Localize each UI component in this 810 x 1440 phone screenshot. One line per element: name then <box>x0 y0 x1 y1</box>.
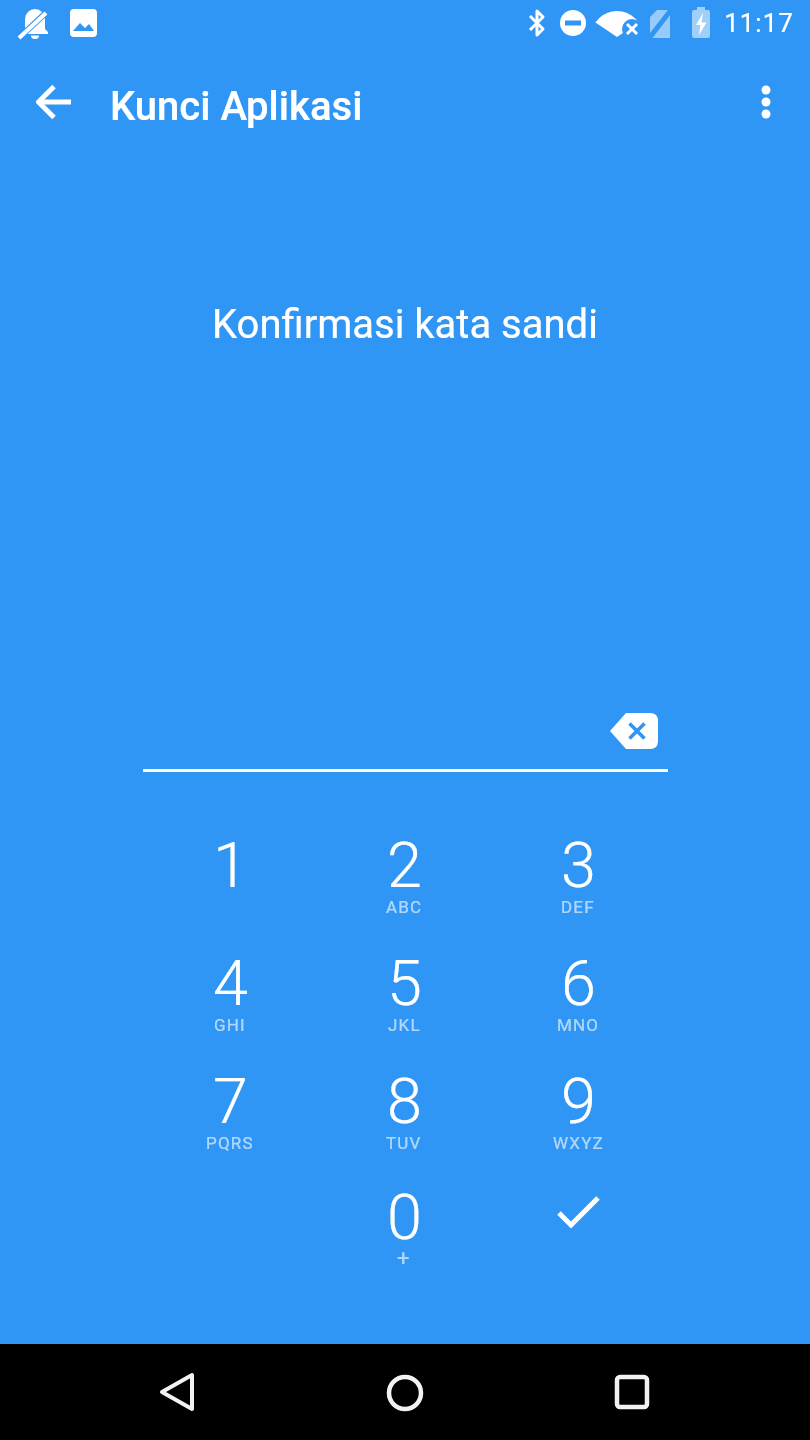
staticText: WXYZ <box>553 1133 604 1153</box>
staticText: PQRS <box>206 1133 254 1153</box>
staticText: 11:17 <box>724 8 794 38</box>
button[interactable] <box>598 701 670 761</box>
staticText: MNO <box>557 1015 600 1035</box>
button[interactable] <box>491 1162 665 1272</box>
staticText: Kunci Aplikasi <box>110 83 363 130</box>
button[interactable] <box>330 1344 480 1440</box>
staticText: 2 <box>387 829 422 903</box>
staticText: 9 <box>561 1065 596 1139</box>
button[interactable] <box>105 1344 255 1440</box>
button[interactable]: 7 <box>143 1057 317 1167</box>
staticText: 0 <box>387 1181 422 1255</box>
staticText: 1 <box>213 829 248 903</box>
staticText: ABC <box>386 897 423 917</box>
button[interactable]: 1 <box>143 821 317 931</box>
staticText: + <box>397 1246 411 1272</box>
button[interactable]: 9 <box>491 1057 665 1167</box>
button[interactable]: 3 <box>491 821 665 931</box>
button[interactable]: 4 <box>143 939 317 1049</box>
button[interactable]: 2 <box>317 821 491 931</box>
staticText: 6 <box>561 947 596 1021</box>
button[interactable]: 5 <box>317 939 491 1049</box>
staticText: Konfirmasi kata sandi <box>212 301 598 348</box>
staticText: TUV <box>386 1133 422 1153</box>
staticText: 5 <box>387 947 422 1021</box>
button[interactable]: 0 <box>317 1173 491 1283</box>
button[interactable]: 6 <box>491 939 665 1049</box>
staticText: JKL <box>388 1015 421 1035</box>
staticText: 3 <box>561 829 596 903</box>
staticText: 7 <box>213 1065 248 1139</box>
button[interactable] <box>736 72 796 132</box>
button[interactable]: 8 <box>317 1057 491 1167</box>
button[interactable] <box>19 66 91 138</box>
staticText: 4 <box>213 947 248 1021</box>
staticText: DEF <box>561 897 595 917</box>
staticText: 8 <box>387 1065 422 1139</box>
button[interactable] <box>555 1344 705 1440</box>
staticText: GHI <box>214 1015 246 1035</box>
